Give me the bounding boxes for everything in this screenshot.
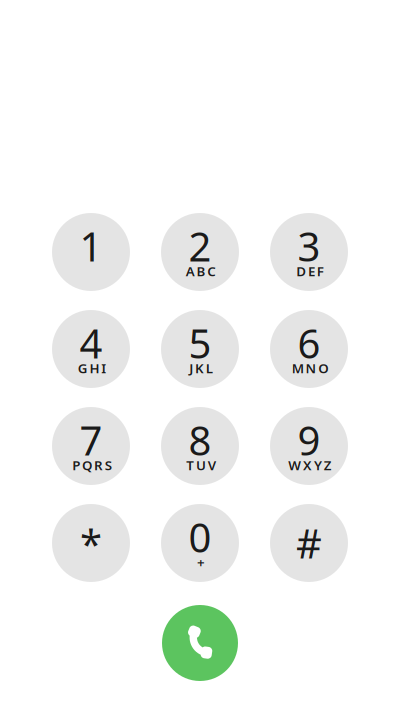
staticText: PQRS: [72, 456, 112, 474]
button[interactable]: Call: [162, 605, 238, 681]
staticText: WXYZ: [288, 456, 332, 474]
staticText: 1: [79, 219, 102, 272]
staticText: +: [197, 553, 205, 571]
staticText: 4: [79, 316, 102, 369]
staticText: 0: [188, 510, 211, 563]
staticText: 7: [79, 413, 102, 466]
staticText: ABC: [186, 262, 216, 280]
button[interactable]: 1: [52, 213, 130, 291]
button[interactable]: 5: [161, 310, 239, 388]
staticText: #: [296, 516, 322, 569]
button[interactable]: 2: [161, 213, 239, 291]
staticText: DEF: [296, 262, 324, 280]
staticText: 3: [297, 219, 320, 272]
button[interactable]: 4: [52, 310, 130, 388]
staticText: *: [80, 516, 102, 569]
button[interactable]: 9: [270, 407, 348, 485]
staticText: 8: [188, 413, 211, 466]
staticText: GHI: [78, 359, 106, 377]
staticText: 6: [297, 316, 320, 369]
button[interactable]: *: [52, 504, 130, 582]
staticText: JKL: [189, 359, 213, 377]
staticText: 9: [297, 413, 320, 466]
staticText: 5: [188, 316, 211, 369]
button[interactable]: 6: [270, 310, 348, 388]
staticText: MNO: [292, 359, 328, 377]
button[interactable]: 3: [270, 213, 348, 291]
button[interactable]: 0: [161, 504, 239, 582]
button[interactable]: #: [270, 504, 348, 582]
staticText: 2: [188, 219, 211, 272]
staticText: TUV: [186, 456, 216, 474]
button[interactable]: 7: [52, 407, 130, 485]
button[interactable]: 8: [161, 407, 239, 485]
